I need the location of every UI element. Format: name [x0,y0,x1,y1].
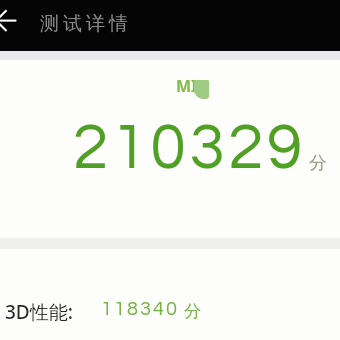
staticText: 测试详情 [40,12,132,36]
button[interactable]: 3D性能: [0,249,340,340]
staticText: MI [176,75,198,97]
staticText: 3D性能: [5,299,73,325]
staticText: 分 [309,152,327,175]
staticText: 210329 [73,116,306,182]
button[interactable]: Back [0,0,30,51]
staticText: 118340 [101,299,179,320]
staticText: 分 [184,301,201,322]
